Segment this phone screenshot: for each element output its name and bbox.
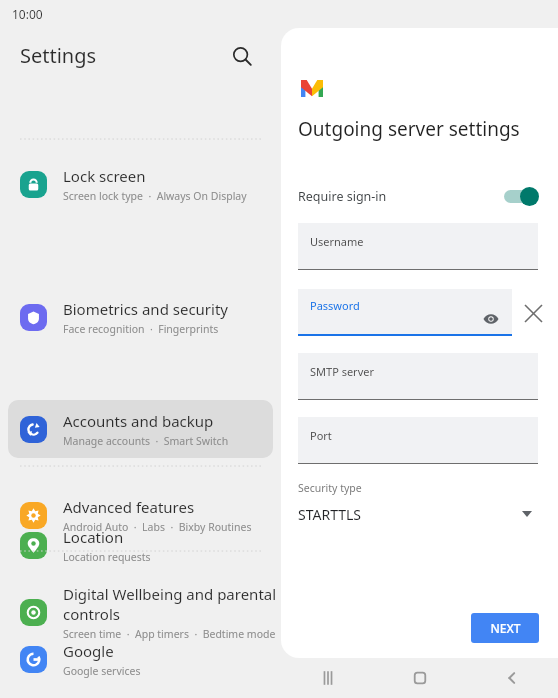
staticText: Username [310, 234, 364, 249]
staticText: Accounts and backup [63, 411, 214, 431]
staticText: Settings [20, 42, 97, 69]
staticText: Lock screen [63, 166, 146, 186]
staticText: Location requests [63, 550, 151, 564]
staticText: Face recognition · Fingerprints [63, 322, 219, 336]
staticText: Android Auto · Labs · Bixby Routines [63, 520, 252, 534]
staticText: NEXT [490, 620, 521, 636]
button[interactable]: Recents [281, 658, 374, 698]
staticText: Outgoing server settings [298, 116, 520, 142]
staticText: Require sign-in [298, 188, 387, 205]
staticText: SMTP server [310, 364, 374, 379]
staticText: Screen lock type · Always On Display [63, 189, 247, 203]
staticText: Advanced features [63, 497, 195, 517]
staticText: Screen time · App timers · Bedtime mode [63, 627, 276, 641]
button[interactable]: Google [0, 631, 281, 687]
button[interactable]: Lock screen [0, 156, 281, 212]
button[interactable]: Advanced features [0, 487, 281, 543]
button[interactable]: Biometrics and security [0, 289, 281, 345]
button[interactable]: Digital Wellbeing and parental [0, 573, 281, 651]
staticText: Permission manager [63, 436, 166, 450]
staticText: Password [310, 298, 360, 313]
staticText: Google services [63, 664, 141, 678]
button[interactable]: Accounts and backup [8, 400, 273, 458]
button[interactable]: NEXT [471, 613, 539, 643]
staticText: Port [310, 428, 332, 443]
button[interactable]: Search [225, 39, 259, 73]
button[interactable]: Location [0, 517, 281, 573]
button[interactable]: Clear [520, 300, 546, 326]
button[interactable]: Security type [298, 478, 538, 530]
staticText: Google [63, 641, 114, 661]
other: Show password [481, 309, 501, 329]
staticText: controls [63, 604, 120, 624]
button[interactable]: Username [298, 223, 538, 271]
staticText: STARTTLS [298, 505, 362, 524]
staticText: Security type [298, 481, 362, 495]
button[interactable]: Password [298, 289, 512, 337]
button[interactable]: Port [298, 417, 538, 465]
staticText: Biometrics and security [63, 299, 229, 319]
button[interactable]: Home [374, 658, 466, 698]
button[interactable]: SMTP server [298, 353, 538, 401]
staticText: Privacy [63, 413, 114, 433]
staticText: 10:00 [12, 6, 43, 22]
button[interactable]: Privacy [0, 403, 281, 459]
staticText: Manage accounts · Smart Switch [63, 434, 229, 448]
button[interactable]: Require sign-in [281, 178, 558, 214]
staticText: Location [63, 527, 124, 547]
button[interactable]: Back [466, 658, 558, 698]
staticText: Digital Wellbeing and parental [63, 584, 277, 604]
